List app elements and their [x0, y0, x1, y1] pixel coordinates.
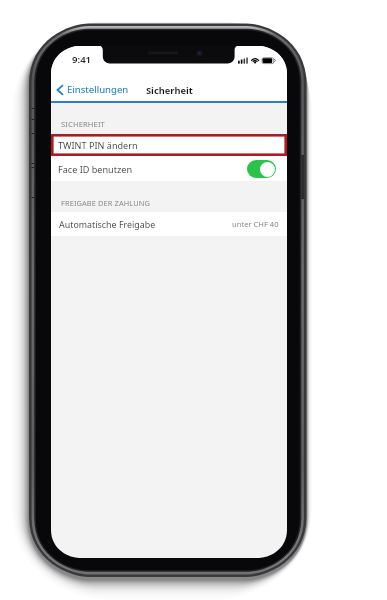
button[interactable] [51, 212, 287, 236]
staticText: Automatische Freigabe [59, 218, 156, 230]
staticText: Sicherheit [146, 84, 193, 97]
staticText: TWINT PIN ändern [58, 139, 138, 151]
staticText: 9:41 [72, 53, 92, 66]
button[interactable] [51, 156, 287, 181]
button[interactable]: Face ID benutzen umschalten [247, 160, 276, 178]
staticText: Einstellungen [67, 83, 129, 96]
staticText: SICHERHEIT [61, 119, 105, 129]
button[interactable] [51, 135, 287, 156]
staticText: Face ID benutzen [58, 163, 133, 175]
staticText: unter CHF 40 [232, 219, 279, 229]
button[interactable]: Einstellungen [55, 80, 132, 98]
staticText: FREIGABE DER ZAHLUNG [61, 198, 151, 208]
